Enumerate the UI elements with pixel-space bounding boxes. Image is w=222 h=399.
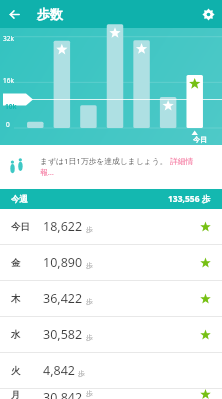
button[interactable]: 金 (0, 245, 222, 281)
staticText: 36,422 (43, 290, 83, 307)
staticText: 水 (11, 329, 43, 341)
staticText: 歩 (86, 333, 93, 342)
staticText: 18,622 (43, 218, 83, 235)
button[interactable]: Back (0, 0, 28, 28)
staticText: 月 (11, 389, 43, 399)
staticText: 木 (11, 293, 43, 305)
staticText: 歩数 (37, 6, 63, 22)
staticText: 歩 (86, 225, 93, 234)
staticText: 4,842 (43, 362, 75, 379)
staticText: 133,556 歩 (168, 193, 211, 205)
staticText: 32k (3, 34, 14, 43)
staticText: 歩 (86, 389, 93, 398)
staticText: 金 (11, 257, 43, 269)
staticText: 0 (6, 120, 10, 129)
button[interactable]: 火 (0, 353, 222, 389)
button[interactable]: 木 (0, 281, 222, 317)
staticText: 今日 (11, 221, 43, 233)
staticText: 30,582 (43, 326, 83, 343)
staticText: 10,890 (43, 254, 83, 271)
button[interactable]: Settings (194, 0, 222, 28)
staticText: 歩 (78, 369, 85, 378)
staticText: 10k (5, 102, 17, 111)
staticText: 歩 (86, 261, 93, 270)
staticText: 詳細情 (170, 156, 194, 166)
staticText: 30,842 (43, 389, 83, 399)
staticText: 歩 (86, 297, 93, 306)
staticText: 今週 (11, 194, 28, 205)
staticText: 報… (40, 167, 54, 178)
staticText: まずは1日1万歩を達成しましょう。 (40, 156, 170, 167)
staticText: 火 (11, 365, 43, 377)
button[interactable]: 今日 (0, 209, 222, 245)
staticText: 16k (3, 76, 14, 85)
button[interactable]: まずは1日1万歩を達成しましょう。 (0, 145, 222, 189)
button[interactable]: 月 (0, 389, 222, 399)
button[interactable]: 水 (0, 317, 222, 353)
staticText: 今日 (193, 135, 207, 144)
